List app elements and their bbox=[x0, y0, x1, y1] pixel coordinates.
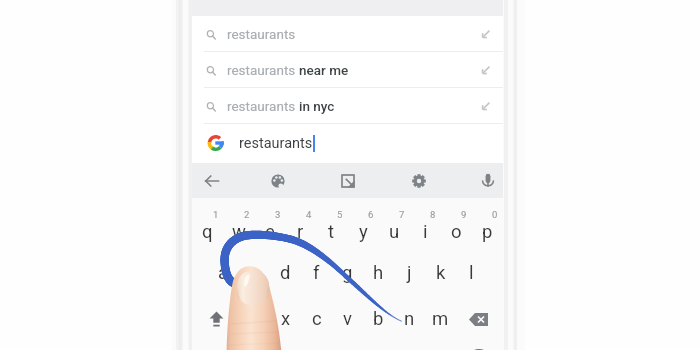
staticText: l bbox=[469, 262, 474, 284]
staticText: 3 bbox=[275, 209, 281, 220]
button[interactable]: x bbox=[270, 300, 301, 337]
button[interactable]: j bbox=[394, 254, 425, 291]
button[interactable]: i bbox=[410, 213, 441, 250]
button[interactable]: restaurants bbox=[192, 88, 503, 124]
staticText: 5 bbox=[337, 209, 343, 220]
staticText: u bbox=[389, 221, 400, 243]
button[interactable]: 5 bbox=[324, 205, 355, 224]
button[interactable]: Settings bbox=[404, 166, 434, 196]
staticText: s bbox=[250, 262, 260, 284]
staticText: restaurants bbox=[227, 26, 296, 42]
button[interactable]: restaurants bbox=[192, 52, 503, 88]
staticText: 1 bbox=[213, 209, 219, 220]
button[interactable]: v bbox=[332, 300, 363, 337]
button[interactable]: 6 bbox=[355, 205, 386, 224]
staticText: q bbox=[202, 221, 213, 243]
staticText: o bbox=[451, 221, 462, 243]
button[interactable]: q bbox=[192, 213, 223, 250]
button[interactable]: w bbox=[223, 213, 254, 250]
staticText: a bbox=[218, 262, 229, 284]
button[interactable]: 1 bbox=[200, 205, 231, 224]
button[interactable]: u bbox=[379, 213, 410, 250]
button[interactable]: s bbox=[239, 254, 270, 291]
button[interactable]: p bbox=[472, 213, 503, 250]
staticText: y bbox=[359, 221, 368, 243]
staticText: g bbox=[342, 262, 353, 284]
button[interactable]: 2 bbox=[231, 205, 262, 224]
staticText: 7 bbox=[399, 209, 405, 220]
staticText: near me bbox=[299, 62, 349, 78]
staticText: restaurants bbox=[227, 98, 299, 114]
button[interactable]: Back bbox=[197, 166, 227, 196]
button[interactable]: g bbox=[332, 254, 363, 291]
button[interactable]: y bbox=[348, 213, 379, 250]
staticText: c bbox=[312, 308, 322, 330]
button[interactable]: m bbox=[425, 300, 456, 337]
button[interactable]: 0 bbox=[479, 205, 510, 224]
button[interactable]: b bbox=[363, 300, 394, 337]
staticText: v bbox=[343, 308, 352, 330]
button[interactable]: restaurants bbox=[192, 124, 503, 163]
button[interactable]: 8 bbox=[417, 205, 448, 224]
button[interactable]: o bbox=[441, 213, 472, 250]
staticText: h bbox=[373, 262, 384, 284]
staticText: restaurants bbox=[239, 135, 313, 152]
staticText: t bbox=[328, 221, 335, 243]
button[interactable]: n bbox=[394, 300, 425, 337]
staticText: e bbox=[265, 221, 275, 243]
staticText: i bbox=[423, 221, 428, 243]
button[interactable]: k bbox=[425, 254, 456, 291]
staticText: z bbox=[250, 308, 260, 330]
staticText: k bbox=[436, 262, 446, 284]
staticText: r bbox=[297, 221, 304, 243]
button[interactable]: Stickers bbox=[333, 166, 363, 196]
button[interactable]: Voice input bbox=[473, 166, 503, 196]
button[interactable]: 9 bbox=[448, 205, 479, 224]
staticText: 2 bbox=[244, 209, 250, 220]
button[interactable]: h bbox=[363, 254, 394, 291]
button[interactable]: Shift bbox=[201, 303, 232, 336]
button[interactable]: f bbox=[301, 254, 332, 291]
button[interactable]: Search bbox=[467, 349, 491, 350]
staticText: m bbox=[432, 308, 449, 330]
staticText: n bbox=[404, 308, 415, 330]
staticText: x bbox=[281, 308, 291, 330]
staticText: restaurants bbox=[227, 62, 299, 78]
button[interactable]: Backspace bbox=[463, 303, 494, 336]
staticText: p bbox=[482, 221, 493, 243]
button[interactable]: d bbox=[270, 254, 301, 291]
staticText: j bbox=[407, 262, 412, 284]
button[interactable]: l bbox=[456, 254, 487, 291]
staticText: 8 bbox=[430, 209, 436, 220]
staticText: 4 bbox=[306, 209, 312, 220]
staticText: d bbox=[280, 262, 291, 284]
staticText: w bbox=[232, 221, 246, 243]
button[interactable]: restaurants bbox=[192, 16, 503, 52]
button[interactable]: 7 bbox=[386, 205, 417, 224]
staticText: 0 bbox=[492, 209, 498, 220]
button[interactable]: e bbox=[254, 213, 285, 250]
button[interactable]: 3 bbox=[262, 205, 293, 224]
button[interactable]: Themes bbox=[263, 166, 293, 196]
staticText: 9 bbox=[461, 209, 467, 220]
staticText: b bbox=[373, 308, 384, 330]
button[interactable]: a bbox=[208, 254, 239, 291]
button[interactable]: t bbox=[316, 213, 347, 250]
staticText: 6 bbox=[368, 209, 374, 220]
button[interactable]: z bbox=[239, 300, 270, 337]
staticText: in nyc bbox=[299, 98, 335, 114]
button[interactable]: r bbox=[285, 213, 316, 250]
button[interactable]: 4 bbox=[293, 205, 324, 224]
staticText: f bbox=[313, 262, 320, 284]
button[interactable]: c bbox=[301, 300, 332, 337]
